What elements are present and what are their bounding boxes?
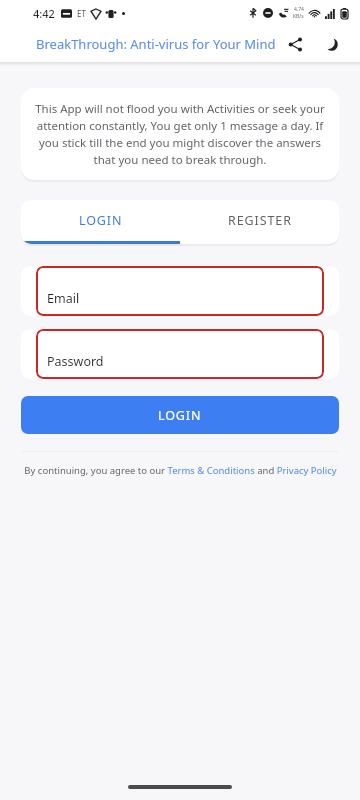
- staticText: Email: [47, 290, 80, 307]
- staticText: By continuing, you agree to our Terms & …: [24, 464, 337, 477]
- button[interactable]: Share: [280, 29, 310, 59]
- staticText: REGISTER: [228, 212, 292, 229]
- button[interactable]: Password: [36, 329, 324, 379]
- staticText: This App will not flood you with Activit…: [35, 101, 325, 168]
- staticText: 4:42: [33, 6, 55, 21]
- staticText: ET: [77, 8, 86, 19]
- staticText: BreakThrough: Anti-virus for Your Mind: [36, 35, 276, 53]
- button[interactable]: Email: [36, 266, 324, 316]
- staticText: Password: [47, 353, 104, 370]
- staticText: LOGIN: [79, 212, 123, 229]
- button[interactable]: LOGIN: [21, 396, 339, 434]
- button[interactable]: Toggle dark mode: [316, 29, 346, 59]
- button[interactable]: LOGIN: [21, 200, 180, 241]
- button[interactable]: REGISTER: [180, 200, 339, 241]
- staticText: KB/s: [293, 13, 304, 20]
- staticText: 4.74: [294, 6, 304, 13]
- staticText: LOGIN: [158, 407, 202, 424]
